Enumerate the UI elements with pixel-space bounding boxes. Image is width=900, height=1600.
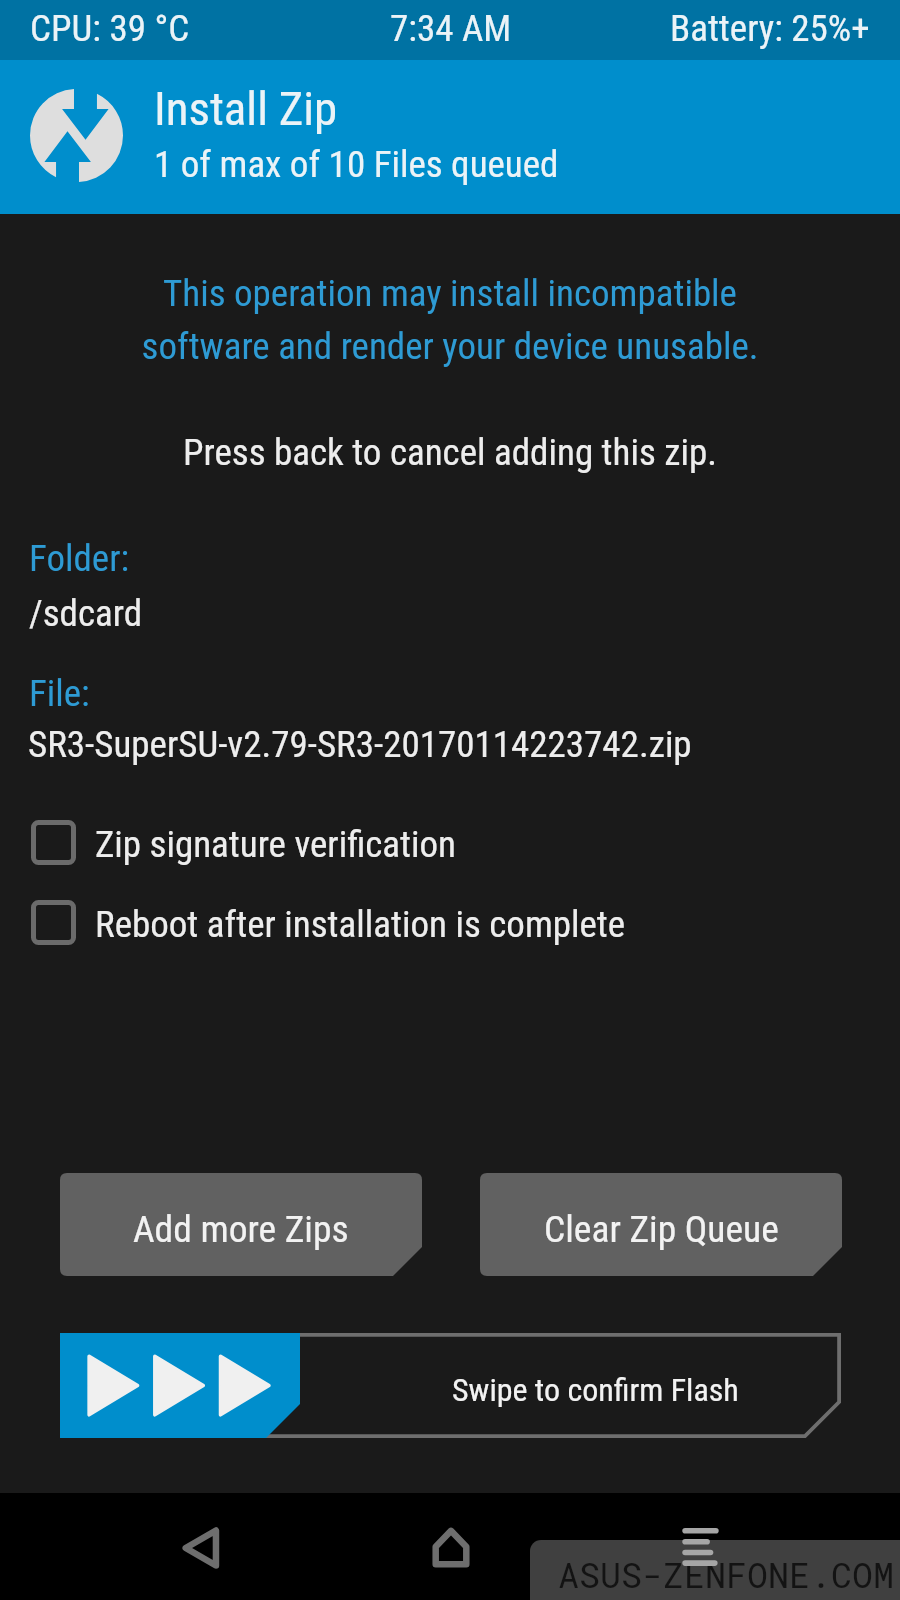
staticText: File:	[29, 672, 90, 715]
button[interactable]: Recent apps	[660, 1507, 740, 1587]
staticText: Folder:	[29, 537, 130, 580]
staticText: SR3-SuperSU-v2.79-SR3-20170114223742.zip	[28, 723, 692, 766]
staticText: ASUS-ZENFONE.COM	[558, 1551, 895, 1597]
staticText: Battery: 25%+	[670, 7, 870, 50]
staticText: Press back to cancel adding this zip.	[0, 431, 900, 474]
button[interactable]: Swipe to confirm Flash	[60, 1333, 841, 1438]
button[interactable]: Reboot after installation is complete	[0, 891, 900, 953]
staticText: 7:34 AM	[390, 7, 512, 50]
staticText: /sdcard	[29, 592, 143, 635]
staticText: Reboot after installation is complete	[95, 903, 626, 946]
staticText: 1 of max of 10 Files queued	[154, 143, 559, 186]
staticText: Install Zip	[154, 81, 338, 136]
button[interactable]: Home	[411, 1507, 491, 1587]
staticText: Add more Zips	[133, 1207, 349, 1251]
staticText: Clear Zip Queue	[544, 1207, 779, 1251]
button[interactable]: Add more Zips	[60, 1173, 422, 1276]
button[interactable]: Back	[161, 1508, 241, 1588]
button[interactable]: Zip signature verification	[0, 811, 900, 873]
staticText: CPU: 39 °C	[30, 7, 190, 50]
staticText: Swipe to confirm Flash	[452, 1371, 739, 1409]
staticText: Zip signature verification	[95, 823, 457, 866]
button[interactable]: Clear Zip Queue	[480, 1173, 842, 1276]
staticText: This operation may install incompatible …	[0, 272, 900, 368]
